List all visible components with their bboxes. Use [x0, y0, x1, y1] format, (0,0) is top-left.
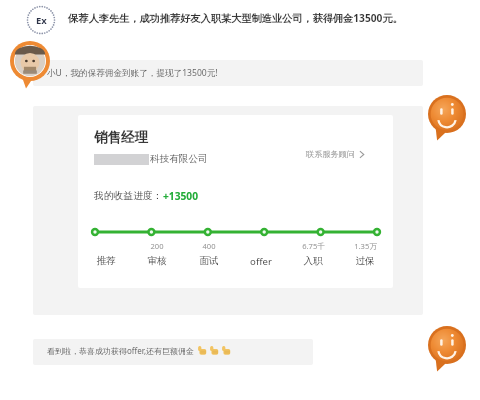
button[interactable]: Assistant avatar	[428, 326, 466, 372]
staticText: 6.75千	[302, 241, 325, 251]
staticText: offer	[250, 255, 272, 268]
staticText: 联系服务顾问	[306, 149, 356, 159]
staticText: 200	[150, 241, 164, 251]
button[interactable]: User avatar	[10, 41, 50, 89]
button[interactable]: 小U，我的保荐佣金到账了，提现了13500元!	[33, 60, 423, 86]
staticText: 1.35万	[354, 241, 377, 251]
staticText: 400	[202, 241, 216, 251]
staticText: 推荐	[96, 255, 116, 267]
staticText: 过保	[355, 255, 375, 267]
button[interactable]: offer	[235, 255, 287, 268]
staticText: 审核	[147, 255, 167, 267]
button[interactable]: 面试	[183, 255, 235, 267]
staticText: 销售经理	[94, 129, 148, 146]
button[interactable]: 推荐	[80, 255, 131, 267]
button[interactable]: 审核	[131, 255, 183, 267]
staticText: 看到啦，恭喜成功获得offer,还有巨额佣金	[47, 345, 195, 356]
staticText: +13500	[163, 189, 198, 203]
staticText: 我的收益进度：	[94, 190, 163, 202]
staticText: 面试	[199, 255, 219, 267]
button[interactable]: Assistant avatar	[428, 95, 466, 141]
button[interactable]: 销售经理	[78, 115, 393, 288]
button[interactable]: 联系服务顾问	[306, 149, 365, 159]
button[interactable]: 看到啦，恭喜成功获得offer,还有巨额佣金	[33, 339, 313, 365]
staticText: 科技有限公司	[150, 153, 208, 165]
staticText: 小U，我的保荐佣金到账了，提现了13500元!	[47, 67, 218, 79]
staticText: 保荐人李先生，成功推荐好友入职某大型制造业公司，获得佣金13500元。	[68, 11, 403, 25]
button[interactable]: 入职	[287, 255, 339, 267]
staticText: Ex	[36, 14, 47, 27]
staticText: 入职	[303, 255, 323, 267]
button[interactable]: 过保	[339, 255, 391, 267]
